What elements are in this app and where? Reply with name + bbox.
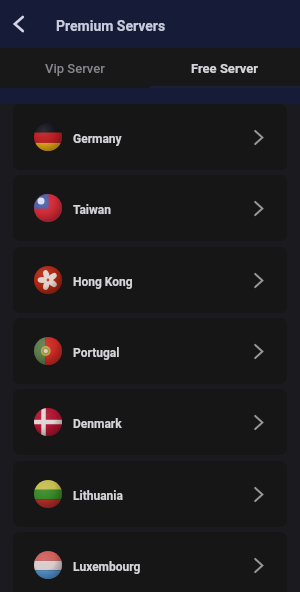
button[interactable]: Hong Kong (13, 247, 287, 313)
button[interactable]: Taiwan (13, 175, 287, 241)
staticText: Lithuania (73, 489, 123, 503)
staticText: Premium Servers (56, 18, 166, 34)
staticText: Denmark (73, 417, 122, 431)
staticText: Luxembourg (73, 560, 141, 574)
button[interactable]: Denmark (13, 389, 287, 455)
staticText: Portugal (73, 346, 120, 360)
button[interactable]: Back (4, 10, 32, 38)
staticText: Hong Kong (73, 275, 133, 289)
button[interactable]: Germany (13, 104, 287, 170)
staticText: Free Server (191, 61, 259, 76)
staticText: Taiwan (73, 203, 112, 217)
button[interactable]: Lithuania (13, 461, 287, 527)
button[interactable]: Free Server (150, 48, 300, 88)
button[interactable]: Vip Server (0, 48, 150, 88)
button[interactable]: Luxembourg (13, 532, 287, 592)
staticText: Vip Server (45, 61, 105, 76)
button[interactable]: Portugal (13, 318, 287, 384)
staticText: Germany (73, 132, 122, 146)
